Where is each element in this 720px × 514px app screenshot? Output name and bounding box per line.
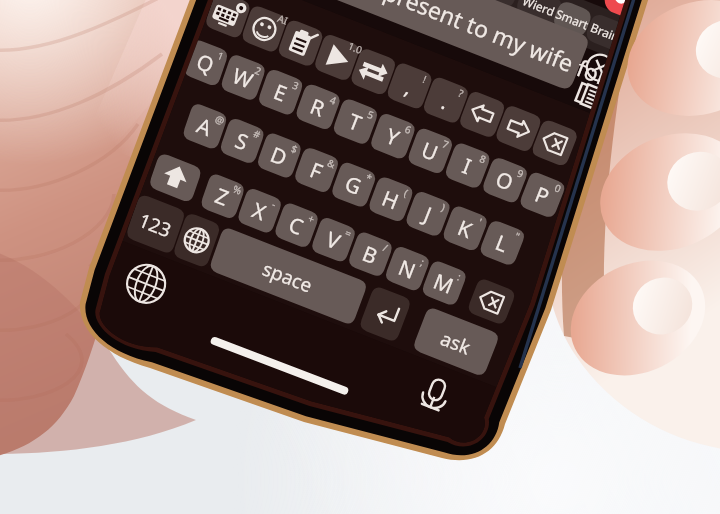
button[interactable]: Hand holding a phone showing an on-scree…	[0, 0, 720, 514]
